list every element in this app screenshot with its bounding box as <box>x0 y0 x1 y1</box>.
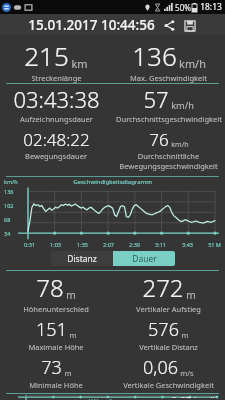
staticText: 1:03 <box>50 241 61 248</box>
staticText: m <box>66 288 76 302</box>
staticText: Durchschnittsgeschwindigkeit <box>116 114 222 124</box>
staticText: Streckenlänge <box>31 73 82 83</box>
staticText: 15.01.2017 10:44:56 <box>28 16 155 34</box>
button[interactable]: Distanz <box>51 251 113 266</box>
staticText: Vertikaler Aufstieg <box>136 304 201 314</box>
staticText: Distanz <box>67 253 97 265</box>
staticText: Vertikale Geschwindigkeit <box>123 380 214 390</box>
staticText: 76 <box>149 128 169 151</box>
staticText: 215 <box>24 38 69 73</box>
staticText: 2:39 <box>129 241 140 248</box>
button[interactable]: Dauer <box>113 251 175 266</box>
staticText: Durchschnittliche Bewegungsgeschwindigke… <box>119 151 218 171</box>
staticText: 0,87 km/h <box>171 394 219 398</box>
staticText: km <box>71 56 88 71</box>
staticText: Höhendiagramm <box>88 397 137 400</box>
staticText: 34 <box>4 230 11 237</box>
staticText: 3:43 <box>182 241 193 248</box>
button[interactable]: 215 <box>0 38 112 83</box>
staticText: km/h <box>4 178 18 185</box>
staticText: m <box>64 368 72 378</box>
staticText: Dauer <box>132 253 157 265</box>
staticText: Vertikale Distanz <box>139 342 198 352</box>
staticText: 136 <box>132 38 177 73</box>
staticText: 2:07 <box>103 241 114 248</box>
staticText: 51 M <box>208 241 221 248</box>
staticText: Max. Geschwindigkeit <box>130 73 207 83</box>
staticText: m <box>181 330 189 340</box>
staticText: m <box>69 330 77 340</box>
staticText: 151 <box>36 317 67 342</box>
staticText: km/h <box>179 56 206 71</box>
button[interactable]: Save <box>182 18 197 33</box>
staticText: Geschwindigkeitsdiagramm <box>73 178 152 186</box>
staticText: 272 <box>142 271 184 304</box>
staticText: 0,06 <box>143 355 178 380</box>
staticText: 68 <box>4 216 11 223</box>
staticText: 57 <box>143 84 169 114</box>
staticText: 03:43:38 <box>13 84 100 114</box>
staticText: 3:11 <box>155 241 166 248</box>
staticText: 18:13 <box>200 1 222 13</box>
staticText: km/h <box>171 139 189 149</box>
button[interactable]: 136 <box>112 38 225 83</box>
staticText: Minimale Höhe <box>29 380 83 390</box>
staticText: km/h <box>171 99 194 112</box>
staticText: 02:48:22 <box>23 128 90 151</box>
staticText: 0:31 <box>24 241 35 248</box>
staticText: Aufzeichnungsdauer <box>20 114 93 124</box>
staticText: m/s <box>180 368 194 378</box>
staticText: 73 <box>41 355 62 380</box>
staticText: 102 <box>4 202 14 209</box>
staticText: 50% <box>175 2 191 13</box>
staticText: 136 <box>4 188 14 195</box>
staticText: 576 <box>148 317 179 342</box>
staticText: Höhenunterschied <box>23 304 89 314</box>
button[interactable]: Share <box>162 18 177 33</box>
staticText: Maximale Höhe <box>28 342 84 352</box>
staticText: Bewegungsdauer <box>25 151 87 161</box>
staticText: 1:35 <box>77 241 88 248</box>
staticText: m <box>186 288 196 302</box>
staticText: 78 <box>36 271 64 304</box>
